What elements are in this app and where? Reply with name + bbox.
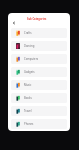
staticText: Sub Categories: [27, 17, 47, 21]
button[interactable]: Gadgets: [11, 67, 67, 77]
button[interactable]: Computers: [11, 54, 67, 64]
staticText: Books: [24, 96, 32, 100]
staticText: Music: [24, 83, 32, 87]
button[interactable]: Books: [11, 93, 67, 103]
button[interactable]: Dancing: [11, 41, 67, 51]
staticText: Computers: [24, 57, 39, 61]
button[interactable]: Crafts: [11, 28, 67, 38]
staticText: Crafts: [24, 31, 32, 35]
button[interactable]: Phones: [11, 119, 67, 129]
staticText: Travel: [24, 109, 32, 113]
staticText: Dancing: [24, 44, 35, 48]
staticText: Phones: [24, 122, 34, 126]
staticText: Gadgets: [24, 70, 35, 74]
button[interactable]: Music: [11, 80, 67, 90]
button[interactable]: Travel: [11, 106, 67, 116]
button[interactable]: Back: [11, 20, 17, 26]
